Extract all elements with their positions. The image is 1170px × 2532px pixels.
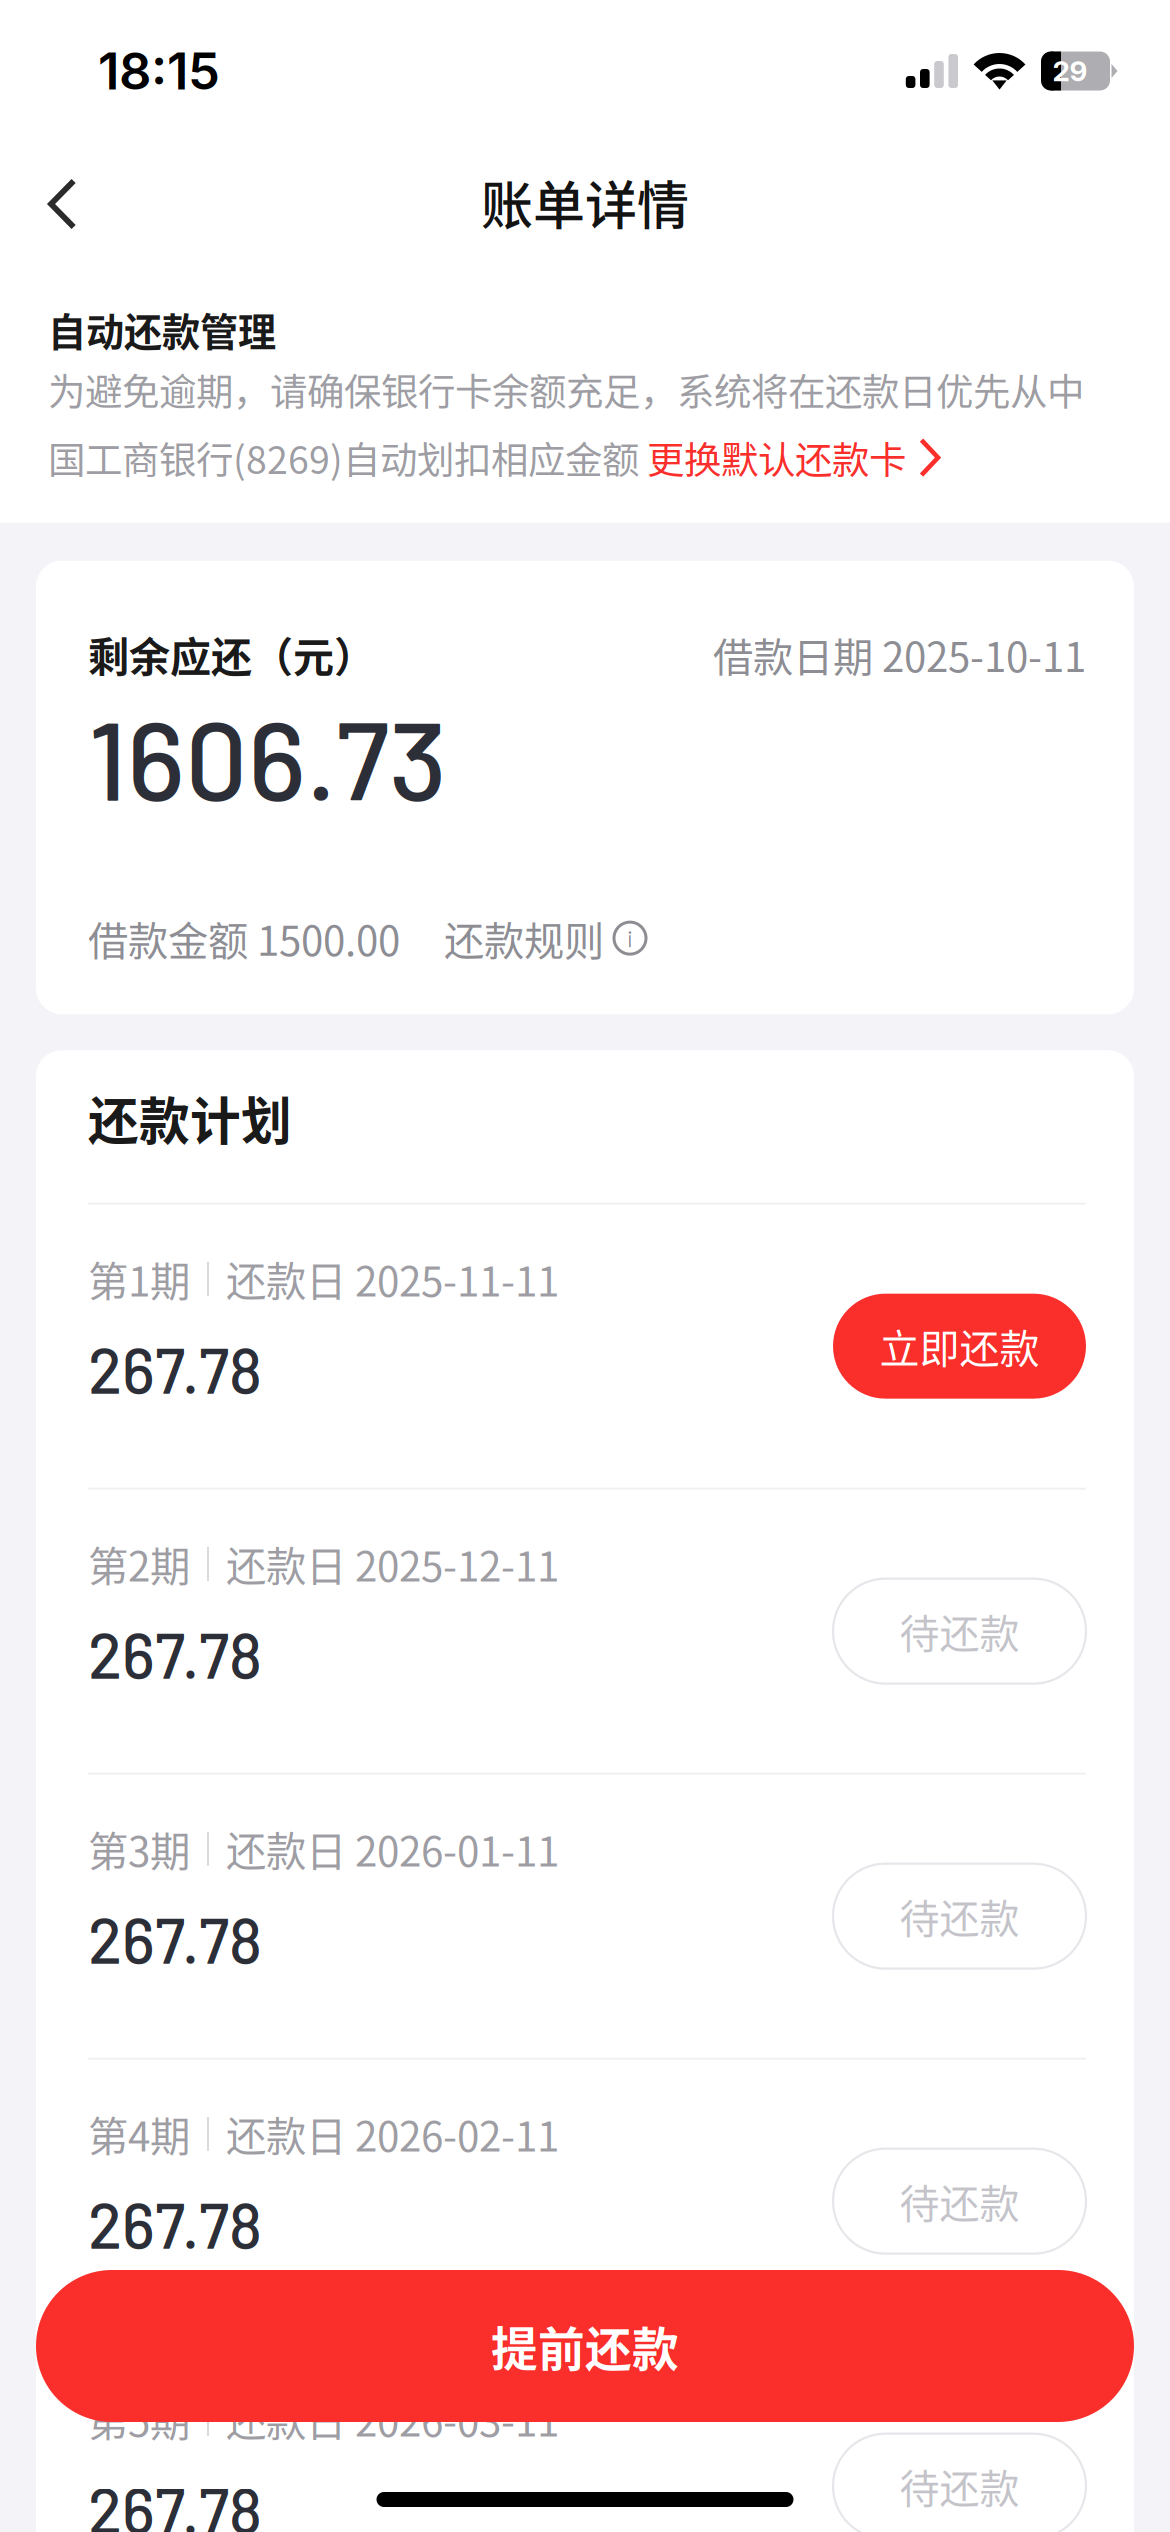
staticText: 267.78 bbox=[88, 2186, 262, 2261]
staticText: 还款规则 bbox=[444, 909, 604, 967]
staticText: 还款日 2026-01-11 bbox=[226, 1820, 559, 1878]
staticText: 更换默认还款卡 bbox=[647, 430, 906, 485]
staticText: 267.78 bbox=[88, 1331, 262, 1406]
staticText: 账单详情 bbox=[481, 164, 689, 240]
button[interactable]: 待还款 bbox=[833, 1579, 1086, 1684]
staticText: 提前还款 bbox=[491, 2312, 679, 2380]
staticText: 第2期 bbox=[88, 1535, 190, 1593]
staticText: 18:15 bbox=[98, 40, 220, 102]
staticText: 267.78 bbox=[88, 1616, 262, 1691]
button[interactable]: 待还款 bbox=[833, 2434, 1086, 2532]
button[interactable]: 待还款 bbox=[833, 1864, 1086, 1969]
staticText: 国工商银行(8269)自动划扣相应金额 bbox=[48, 430, 647, 485]
staticText: 待还款 bbox=[899, 1887, 1019, 1945]
staticText: 待还款 bbox=[899, 2172, 1019, 2230]
staticText: 267.78 bbox=[88, 2471, 262, 2532]
staticText: 待还款 bbox=[899, 2457, 1019, 2515]
staticText: 还款日 2025-11-11 bbox=[226, 1250, 559, 1308]
button[interactable]: Back bbox=[0, 146, 120, 258]
staticText: 待还款 bbox=[899, 1602, 1019, 1660]
button[interactable]: 立即还款 bbox=[833, 1294, 1086, 1399]
button[interactable]: 提前还款 bbox=[36, 2270, 1134, 2422]
staticText: 还款日 2025-12-11 bbox=[226, 1535, 559, 1593]
button[interactable]: 还款规则 bbox=[400, 909, 646, 967]
button[interactable]: 待还款 bbox=[833, 2149, 1086, 2254]
staticText: 第3期 bbox=[88, 1820, 190, 1878]
staticText: 为避免逾期，请确保银行卡余额充足，系统将在还款日优先从中 bbox=[48, 362, 1084, 416]
staticText: 还款计划 bbox=[88, 1081, 292, 1155]
staticText: 1606.73 bbox=[88, 690, 447, 823]
staticText: 剩余应还（元） bbox=[88, 625, 375, 684]
staticText: 立即还款 bbox=[879, 1317, 1039, 1375]
staticText: 第1期 bbox=[88, 1250, 190, 1308]
staticText: 267.78 bbox=[88, 1901, 262, 1976]
staticText: 第5期 bbox=[88, 2390, 190, 2448]
staticText: 借款日期 2025-10-11 bbox=[713, 625, 1086, 684]
staticText: 29 bbox=[1052, 54, 1087, 88]
staticText: 还款日 2026-03-11 bbox=[226, 2390, 559, 2448]
staticText: 还款日 2026-02-11 bbox=[226, 2105, 559, 2163]
staticText: i bbox=[627, 924, 633, 952]
staticText: 第4期 bbox=[88, 2105, 190, 2163]
staticText: 自动还款管理 bbox=[48, 302, 276, 357]
button[interactable]: 更换默认还款卡 bbox=[647, 430, 941, 485]
staticText: 借款金额 1500.00 bbox=[88, 909, 400, 967]
